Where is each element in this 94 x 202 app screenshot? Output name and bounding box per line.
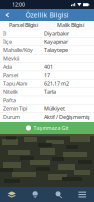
staticText: Tarla bbox=[44, 88, 56, 95]
staticText: Özellik Bilgisi bbox=[25, 11, 68, 19]
staticText: Durum bbox=[3, 113, 20, 120]
staticText: Pafta bbox=[3, 97, 16, 104]
button[interactable]: Layers bbox=[0, 187, 23, 202]
staticText: Malik Bilgisi bbox=[57, 21, 84, 29]
staticText: Nitelik bbox=[3, 88, 18, 95]
staticText: Mülkiyet bbox=[44, 105, 65, 112]
button[interactable]: Malik Bilgisi bbox=[47, 21, 94, 29]
staticText: 401 bbox=[44, 63, 53, 70]
button[interactable]: Search bbox=[47, 187, 70, 202]
staticText: Ada bbox=[3, 63, 12, 70]
staticText: İlçe bbox=[3, 38, 12, 45]
button[interactable]: Taşınmaza Git bbox=[0, 122, 94, 134]
staticText: Kayapınar bbox=[44, 38, 68, 45]
staticText: 17 bbox=[44, 72, 50, 79]
staticText: Tapu Alanı bbox=[3, 80, 27, 87]
staticText: Parsel Bilgisi bbox=[9, 21, 38, 29]
button[interactable]: Back bbox=[0, 9, 14, 21]
staticText: Aktif / Değişmemiş bbox=[44, 113, 90, 120]
staticText: Zemin Tipi bbox=[3, 105, 27, 112]
staticText: 621,17 m2 bbox=[44, 80, 69, 87]
staticText: 12:00 bbox=[12, 1, 25, 8]
button[interactable]: Parsel Bilgisi bbox=[0, 21, 47, 29]
staticText: Talaytepe bbox=[44, 46, 68, 54]
button[interactable]: Menu bbox=[70, 187, 94, 202]
staticText: Taşınmaza Git bbox=[33, 124, 68, 132]
staticText: İl bbox=[3, 30, 6, 37]
staticText: Mahalle/Köy bbox=[3, 46, 33, 54]
staticText: Diyarbakır bbox=[44, 30, 69, 37]
button[interactable]: Location bbox=[23, 187, 47, 202]
staticText: Mevkii bbox=[3, 55, 19, 62]
staticText: Parsel bbox=[3, 72, 18, 79]
